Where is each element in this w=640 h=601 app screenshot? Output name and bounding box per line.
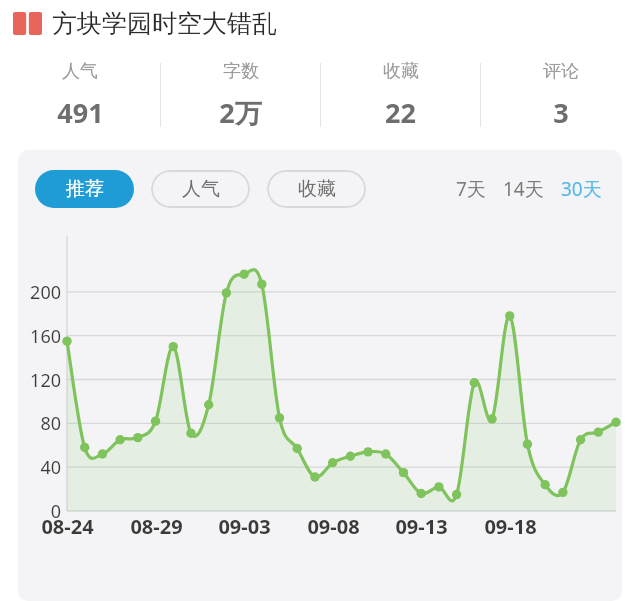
staticText: 200 — [30, 280, 61, 305]
staticText: 推荐 — [66, 177, 104, 201]
staticText: 09-18 — [484, 513, 537, 540]
staticText: 收藏 — [383, 60, 419, 83]
staticText: 评论 — [543, 60, 579, 83]
button[interactable]: 收藏 — [267, 170, 366, 208]
staticText: 人气 — [182, 177, 220, 201]
other: Book — [13, 12, 42, 35]
button[interactable]: 推荐 — [35, 170, 134, 208]
staticText: 09-08 — [307, 513, 360, 540]
staticText: 491 — [57, 94, 104, 131]
staticText: 收藏 — [298, 177, 336, 201]
button[interactable]: 14天 — [500, 170, 547, 208]
staticText: 7天 — [456, 176, 486, 202]
staticText: 160 — [30, 324, 61, 349]
staticText: 09-13 — [395, 513, 448, 540]
staticText: 08-24 — [41, 513, 94, 540]
staticText: 方块学园时空大错乱 — [52, 8, 277, 39]
staticText: 22 — [385, 94, 416, 131]
staticText: 字数 — [223, 60, 259, 83]
button[interactable]: Book — [0, 0, 640, 46]
staticText: 09-03 — [218, 513, 271, 540]
staticText: 08-29 — [130, 513, 183, 540]
other: Popularity trend chart — [18, 226, 622, 511]
staticText: 0 — [50, 499, 61, 524]
staticText: 人气 — [62, 60, 98, 83]
button[interactable]: 7天 — [453, 170, 489, 208]
button[interactable]: 评论 — [481, 46, 640, 144]
staticText: 40 — [40, 455, 61, 480]
button[interactable]: 人气 — [151, 170, 250, 208]
staticText: 3 — [553, 94, 569, 131]
staticText: 120 — [30, 368, 61, 393]
button[interactable]: 30天 — [558, 170, 605, 208]
button[interactable]: 字数 — [161, 46, 320, 144]
staticText: 30天 — [561, 176, 602, 202]
button[interactable]: 人气 — [0, 46, 160, 144]
staticText: 80 — [40, 411, 61, 436]
staticText: 2万 — [219, 94, 262, 131]
staticText: 14天 — [503, 176, 544, 202]
button[interactable]: 收藏 — [321, 46, 480, 144]
